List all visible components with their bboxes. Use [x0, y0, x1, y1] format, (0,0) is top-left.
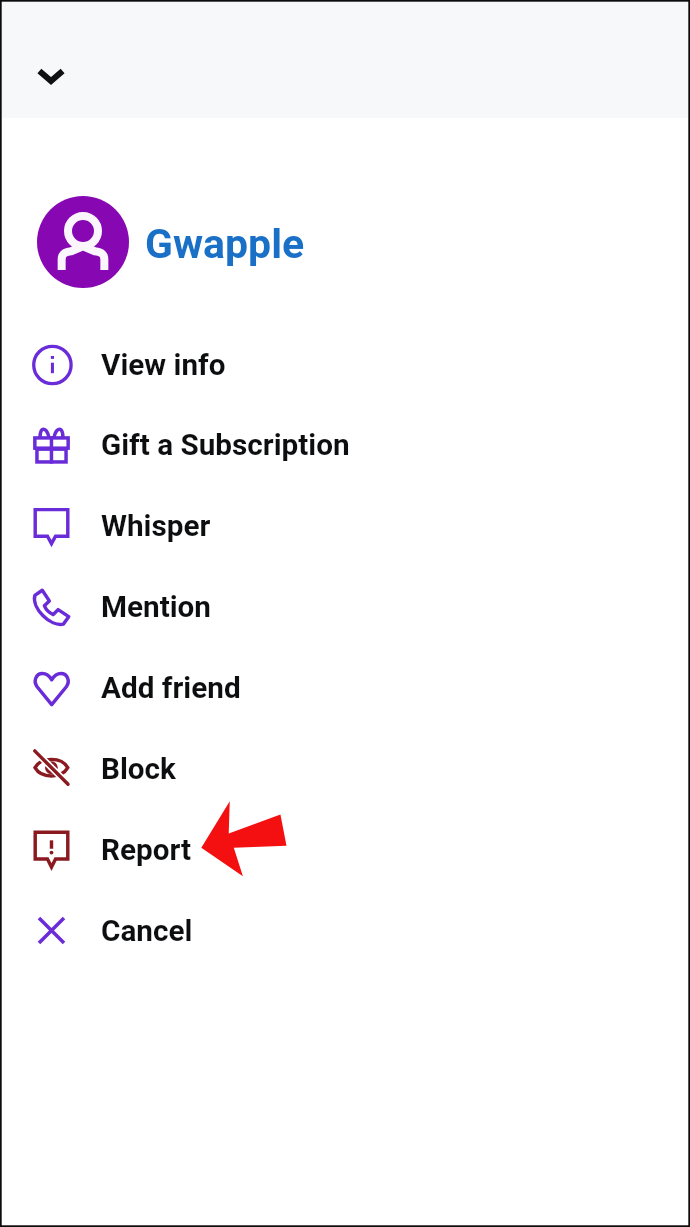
button[interactable]: Add friend: [0, 647, 690, 728]
staticText: Whisper: [101, 508, 211, 543]
staticText: Report: [101, 832, 192, 867]
staticText: View info: [101, 347, 226, 382]
button[interactable]: Gwapple: [0, 196, 690, 288]
button[interactable]: Block: [0, 728, 690, 809]
button[interactable]: Report: [0, 809, 690, 890]
button[interactable]: Cancel: [0, 890, 690, 971]
staticText: Block: [101, 751, 176, 786]
button[interactable]: Mention: [0, 566, 690, 647]
staticText: Gift a Subscription: [101, 427, 350, 462]
button[interactable]: Whisper: [0, 485, 690, 566]
staticText: Mention: [101, 589, 211, 624]
button[interactable]: View info: [0, 324, 690, 405]
staticText: Cancel: [101, 913, 193, 948]
button[interactable]: Collapse: [25, 50, 77, 102]
staticText: Add friend: [101, 670, 241, 705]
button[interactable]: Gift a Subscription: [0, 404, 690, 485]
staticText: Gwapple: [145, 220, 305, 268]
